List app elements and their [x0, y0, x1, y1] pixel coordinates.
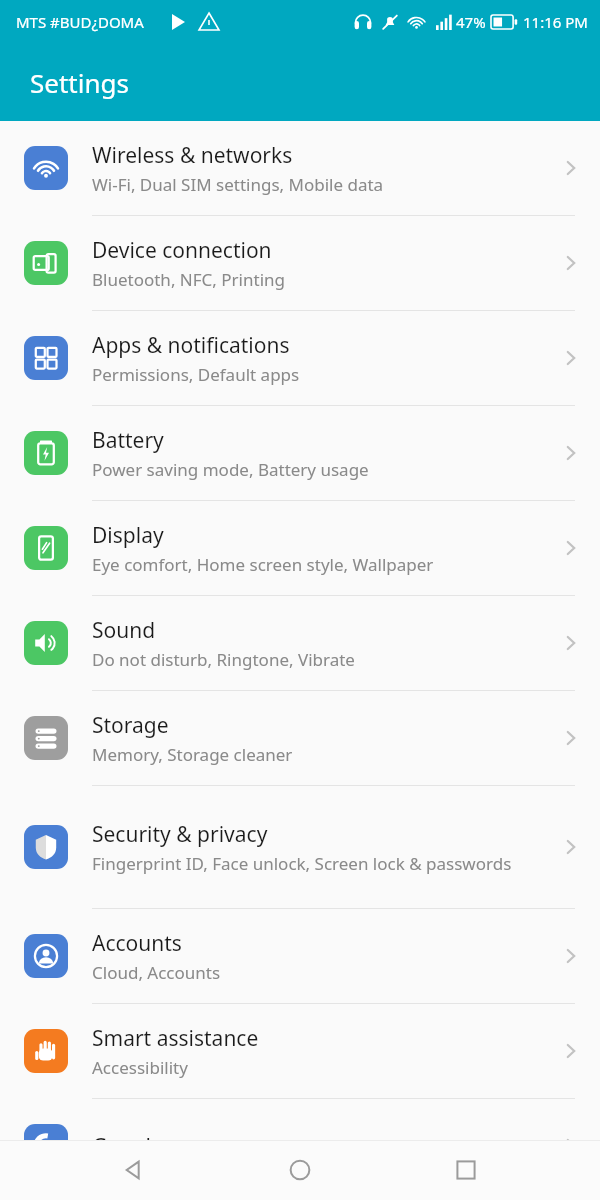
- button[interactable]: Security & privacy: [0, 786, 600, 909]
- staticText: Smart assistance: [92, 1024, 259, 1053]
- button[interactable]: Recent apps: [434, 1140, 498, 1200]
- staticText: Memory, Storage cleaner: [92, 743, 293, 766]
- staticText: Storage: [92, 711, 169, 740]
- staticText: Sound: [92, 616, 156, 645]
- button[interactable]: Accounts: [0, 909, 600, 1004]
- staticText: Google: [92, 1132, 163, 1161]
- staticText: Security & privacy: [92, 820, 268, 849]
- button[interactable]: Sound: [0, 596, 600, 691]
- staticText: Device connection: [92, 236, 272, 265]
- button[interactable]: Wireless & networks: [0, 121, 600, 216]
- staticText: Settings: [30, 65, 129, 100]
- button[interactable]: Device connection: [0, 216, 600, 311]
- staticText: Display: [92, 521, 164, 550]
- staticText: Do not disturb, Ringtone, Vibrate: [92, 648, 355, 671]
- staticText: Wi-Fi, Dual SIM settings, Mobile data: [92, 173, 384, 196]
- staticText: Wireless & networks: [92, 141, 293, 170]
- staticText: 47%: [456, 12, 486, 32]
- staticText: 11:16 PM: [523, 12, 588, 32]
- staticText: Eye comfort, Home screen style, Wallpape…: [92, 553, 434, 576]
- button[interactable]: Google: [0, 1099, 600, 1193]
- button[interactable]: Storage: [0, 691, 600, 786]
- staticText: Fingerprint ID, Face unlock, Screen lock…: [92, 852, 512, 875]
- staticText: Accessibility: [92, 1056, 188, 1079]
- button[interactable]: Smart assistance: [0, 1004, 600, 1099]
- button[interactable]: Display: [0, 501, 600, 596]
- button[interactable]: Battery: [0, 406, 600, 501]
- staticText: Battery: [92, 426, 164, 455]
- staticText: Bluetooth, NFC, Printing: [92, 268, 286, 291]
- button[interactable]: Back: [102, 1140, 166, 1200]
- button[interactable]: Apps & notifications: [0, 311, 600, 406]
- staticText: Cloud, Accounts: [92, 961, 221, 984]
- staticText: MTS #BUD¿DOMA: [16, 12, 144, 32]
- staticText: Power saving mode, Battery usage: [92, 458, 369, 481]
- staticText: Apps & notifications: [92, 331, 290, 360]
- staticText: Accounts: [92, 929, 182, 958]
- staticText: Permissions, Default apps: [92, 363, 300, 386]
- button[interactable]: Home: [268, 1140, 332, 1200]
